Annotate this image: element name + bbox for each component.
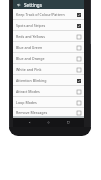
button[interactable]: Blue and Green xyxy=(13,42,84,52)
button[interactable]: Reds and Yellows xyxy=(13,31,84,41)
button[interactable]: Checked xyxy=(76,12,81,17)
button[interactable]: Unchecked xyxy=(76,34,81,39)
button[interactable]: Keep Track of Colour/Pattern Choice xyxy=(13,9,84,19)
button[interactable]: White and Pink xyxy=(13,64,84,74)
button[interactable]: Unchecked xyxy=(76,110,81,115)
button[interactable]: Unchecked xyxy=(76,89,81,94)
button[interactable]: Checked xyxy=(76,78,81,83)
button[interactable]: Loop Modes xyxy=(13,97,84,107)
staticText: Attract Modes xyxy=(16,89,40,94)
staticText: Blue and Green xyxy=(16,45,43,50)
button[interactable]: Navigate up xyxy=(15,1,22,8)
button[interactable]: Checked xyxy=(76,23,81,28)
button[interactable]: Attention Blinking xyxy=(13,75,84,85)
staticText: Keep Track of Colour/Pattern Choice xyxy=(16,12,76,17)
staticText: Reds and Yellows xyxy=(16,34,45,39)
button[interactable]: Blue and Orange xyxy=(13,53,84,63)
staticText: Attention Blinking xyxy=(16,78,47,83)
button[interactable]: Home xyxy=(45,119,52,126)
staticText: Remove Messages xyxy=(16,110,48,115)
staticText: Spots and Stripes xyxy=(16,23,46,28)
staticText: White and Pink xyxy=(16,67,42,72)
button[interactable]: Back xyxy=(26,119,33,126)
staticText: Settings xyxy=(24,2,42,8)
button[interactable]: Remove Messages xyxy=(13,108,84,116)
button[interactable]: Unchecked xyxy=(76,56,81,61)
button[interactable]: Unchecked xyxy=(76,45,81,50)
staticText: Loop Modes xyxy=(16,100,37,105)
button[interactable]: Attract Modes xyxy=(13,86,84,96)
button[interactable]: Spots and Stripes xyxy=(13,20,84,30)
button[interactable]: Unchecked xyxy=(76,67,81,72)
staticText: Blue and Orange xyxy=(16,56,45,61)
button[interactable]: Unchecked xyxy=(76,100,81,105)
button[interactable]: Recent apps xyxy=(65,119,72,126)
